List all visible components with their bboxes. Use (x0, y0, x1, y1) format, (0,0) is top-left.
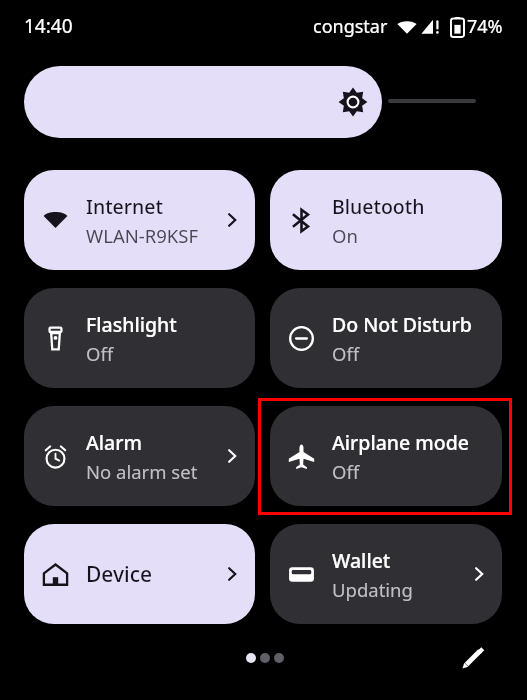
staticText: Updating (332, 577, 413, 602)
button[interactable]: Internet (24, 170, 255, 270)
button[interactable]: Edit tiles (452, 638, 492, 678)
staticText: No alarm set (86, 459, 198, 484)
staticText: 74% (467, 14, 503, 39)
staticText: Off (332, 459, 360, 484)
staticText: On (332, 223, 358, 248)
button[interactable]: Wallet (270, 524, 502, 624)
button[interactable]: Do Not Disturb (270, 288, 502, 388)
staticText: congstar (313, 14, 388, 39)
button[interactable]: Device contro (24, 524, 255, 624)
staticText: Alarm (86, 429, 142, 456)
button[interactable]: Bluetooth (270, 170, 502, 270)
staticText: Off (86, 341, 114, 366)
staticText: Device contro (86, 560, 219, 589)
staticText: Airplane mode (332, 429, 469, 456)
staticText: Wallet (332, 547, 391, 574)
button[interactable]: Brightness (24, 66, 382, 138)
staticText: Flashlight (86, 311, 177, 338)
staticText: Off (332, 341, 360, 366)
staticText: Bluetooth (332, 193, 425, 220)
button[interactable]: Alarm (24, 406, 255, 506)
button[interactable]: Airplane mode (270, 406, 502, 506)
button[interactable]: Flashlight (24, 288, 255, 388)
staticText: 14:40 (24, 13, 73, 39)
staticText: Internet (86, 193, 163, 220)
staticText: Do Not Disturb (332, 311, 472, 338)
staticText: WLAN-R9KSF (86, 223, 199, 248)
